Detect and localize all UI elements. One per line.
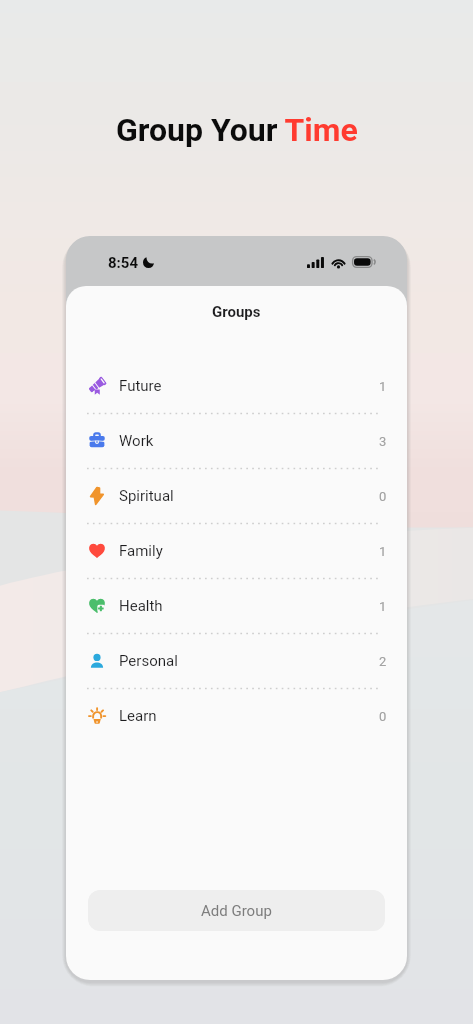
staticText: 8:54 — [108, 254, 139, 272]
button[interactable]: Spiritual — [66, 469, 407, 524]
button[interactable]: Future — [66, 359, 407, 414]
staticText: 0 — [379, 489, 387, 504]
staticText: 0 — [379, 709, 387, 724]
button[interactable]: Learn — [66, 689, 407, 744]
button[interactable]: Add Group — [88, 890, 385, 931]
button[interactable]: Health — [66, 579, 407, 634]
staticText: 1 — [379, 379, 387, 394]
staticText: Spiritual — [119, 487, 174, 505]
staticText: 1 — [379, 544, 387, 559]
button[interactable]: Personal — [66, 634, 407, 689]
staticText: Add Group — [201, 902, 272, 920]
staticText: 2 — [379, 654, 387, 669]
button[interactable]: Family — [66, 524, 407, 579]
button[interactable]: Work — [66, 414, 407, 469]
staticText: Work — [119, 432, 154, 450]
staticText: Family — [119, 542, 163, 560]
staticText: Learn — [119, 707, 157, 725]
staticText: Future — [119, 377, 162, 395]
staticText: Groups — [212, 303, 261, 321]
staticText: Group Your Time — [116, 111, 358, 149]
staticText: 3 — [379, 434, 387, 449]
staticText: Personal — [119, 652, 178, 670]
staticText: Health — [119, 597, 163, 615]
staticText: 1 — [379, 599, 387, 614]
